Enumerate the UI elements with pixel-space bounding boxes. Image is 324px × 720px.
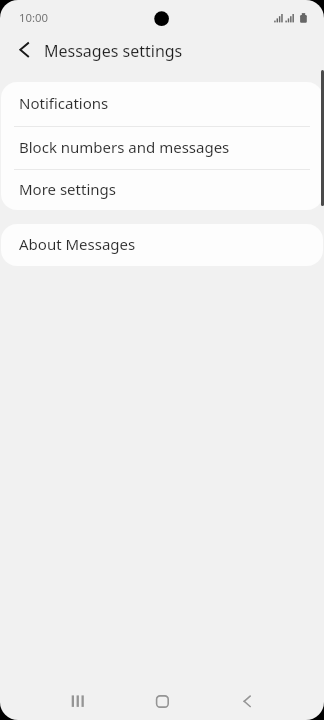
- button[interactable]: Recent apps: [57, 680, 97, 720]
- button[interactable]: Block numbers and messages: [1, 127, 323, 169]
- staticText: About Messages: [19, 234, 136, 254]
- button[interactable]: Back: [230, 680, 270, 720]
- staticText: More settings: [19, 179, 116, 199]
- staticText: Block numbers and messages: [19, 137, 230, 157]
- button[interactable]: Notifications: [1, 82, 323, 126]
- button[interactable]: More settings: [1, 170, 323, 210]
- button[interactable]: Home: [142, 680, 182, 720]
- button[interactable]: About Messages: [1, 224, 323, 266]
- staticText: Messages settings: [44, 40, 183, 62]
- staticText: 10:00: [19, 10, 49, 26]
- staticText: Notifications: [19, 93, 109, 113]
- button[interactable]: Navigate up: [0, 30, 40, 70]
